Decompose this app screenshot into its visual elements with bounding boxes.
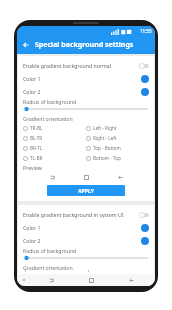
button[interactable]: [23, 254, 149, 262]
button[interactable]: Color 1: [23, 221, 149, 234]
button[interactable]: TL-BR: [23, 153, 86, 163]
staticText: 11:55: [140, 28, 152, 34]
button[interactable]: Bottom - Top: [86, 153, 149, 163]
staticText: APPLY: [78, 187, 95, 194]
button[interactable]: Back: [17, 36, 35, 54]
staticText: Left - Right: [93, 125, 117, 131]
button[interactable]: Color 1: [23, 72, 149, 85]
button[interactable]: BR-TL: [23, 143, 86, 153]
staticText: Gradient orientation: [23, 264, 73, 271]
staticText: Top - Bottom: [93, 145, 121, 151]
button[interactable]: Home: [81, 172, 91, 182]
staticText: Bottom - Top: [93, 155, 121, 161]
staticText: Color 1: [23, 75, 41, 82]
button[interactable]: Enable gradient background in system UI: [23, 208, 149, 221]
button[interactable]: BL-TR: [23, 133, 86, 143]
button[interactable]: Recents: [47, 172, 57, 182]
button[interactable]: Back: [115, 172, 125, 182]
staticText: Color 2: [23, 88, 41, 95]
staticText: Enable gradient background normal: [23, 62, 112, 69]
button[interactable]: Color 2: [23, 234, 149, 247]
button[interactable]: Home: [86, 275, 96, 285]
button[interactable]: Left - Right: [86, 123, 149, 133]
staticText: Color 1: [23, 224, 41, 231]
button[interactable]: Back: [126, 275, 136, 285]
staticText: BR-TL: [30, 145, 43, 151]
staticText: BL-TR: [30, 135, 43, 141]
staticText: Radius of background: [23, 247, 77, 254]
button[interactable]: Top - Bottom: [86, 143, 149, 153]
button[interactable]: APPLY: [47, 185, 125, 196]
button[interactable]: Enable gradient background normal: [23, 59, 149, 72]
staticText: Right - Left: [93, 135, 117, 141]
button[interactable]: Recents: [46, 275, 56, 285]
button[interactable]: Right - Left: [86, 133, 149, 143]
button[interactable]: [23, 105, 149, 113]
button[interactable]: TR-BL: [23, 123, 86, 133]
staticText: TR-BL: [30, 125, 43, 131]
button[interactable]: Color 2: [23, 85, 149, 98]
staticText: Color 2: [23, 237, 41, 244]
staticText: TL-BR: [30, 155, 43, 161]
staticText: Preview: [23, 164, 42, 171]
staticText: Gradient orientation: [23, 115, 73, 122]
staticText: Radius of background: [23, 98, 77, 105]
staticText: Enable gradient background in system UI: [23, 211, 124, 218]
staticText: Special background settings: [35, 40, 134, 50]
